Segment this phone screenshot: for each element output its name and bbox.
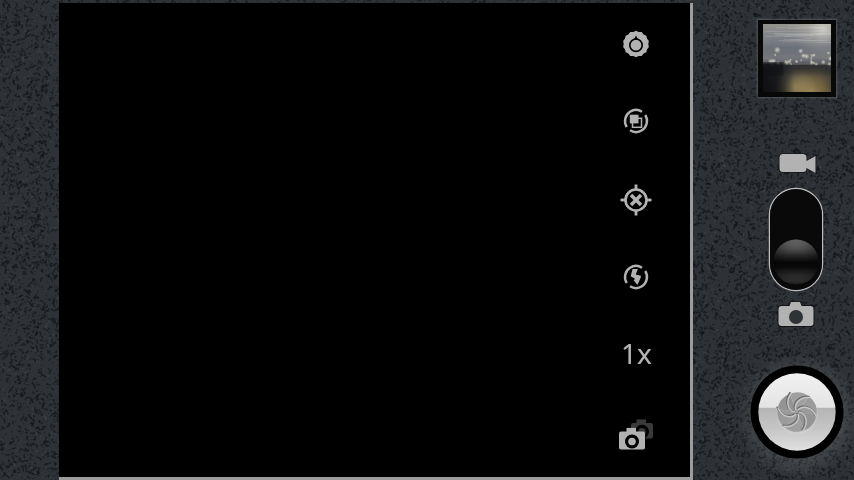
button[interactable]: Video mode — [775, 148, 817, 178]
button[interactable]: Photo mode — [776, 300, 816, 332]
button[interactable]: Camera or video mode switch — [766, 185, 826, 294]
staticText: 1x — [621, 334, 652, 372]
button[interactable]: Last photo — [754, 16, 840, 101]
button[interactable]: Flash off — [612, 253, 660, 301]
button[interactable]: Location off — [612, 176, 660, 224]
button[interactable]: Switch camera — [612, 411, 660, 459]
button[interactable]: Settings — [612, 20, 660, 68]
button[interactable]: HDR off — [612, 97, 660, 145]
button[interactable]: 1x — [612, 330, 660, 378]
button[interactable]: Shutter — [738, 353, 854, 471]
